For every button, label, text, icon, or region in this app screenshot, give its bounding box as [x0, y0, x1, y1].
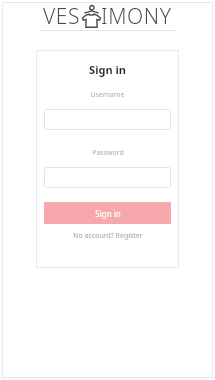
- staticText: No account? Register: [73, 231, 143, 241]
- button[interactable]: No account? Register: [44, 231, 171, 241]
- staticText: Sign in: [89, 62, 126, 77]
- staticText: Password: [92, 148, 124, 158]
- button[interactable]: Sign in: [44, 202, 171, 224]
- staticText: IMONY: [101, 2, 172, 30]
- button[interactable]: [44, 109, 171, 130]
- staticText: Username: [90, 90, 125, 100]
- other: Vestimony: [43, 2, 172, 30]
- button[interactable]: [44, 167, 171, 188]
- staticText: Sign in: [95, 208, 121, 219]
- staticText: VES: [43, 2, 81, 30]
